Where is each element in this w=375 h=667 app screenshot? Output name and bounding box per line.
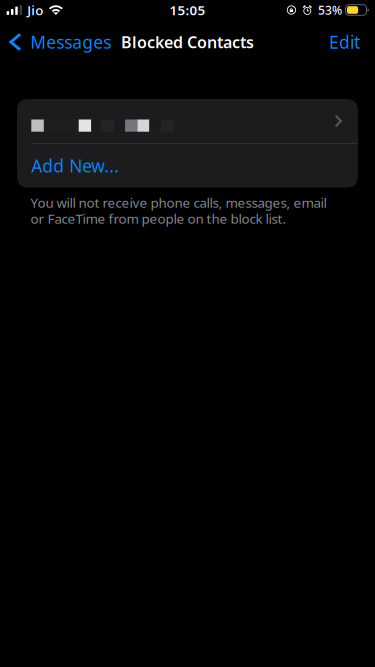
button[interactable]: Messages xyxy=(0,20,119,64)
staticText: Jio xyxy=(27,1,43,19)
button[interactable]: Edit xyxy=(317,20,375,64)
staticText: Add New... xyxy=(31,154,119,177)
button[interactable]: Blocked contact xyxy=(17,99,358,143)
staticText: Edit xyxy=(329,30,360,53)
staticText: 15:05 xyxy=(169,1,205,19)
staticText: You will not receive phone calls, messag… xyxy=(30,194,326,227)
staticText: Blocked Contacts xyxy=(121,31,254,53)
button[interactable]: Add New... xyxy=(17,144,358,188)
staticText: 53% xyxy=(318,2,342,18)
staticText: Messages xyxy=(30,30,111,53)
